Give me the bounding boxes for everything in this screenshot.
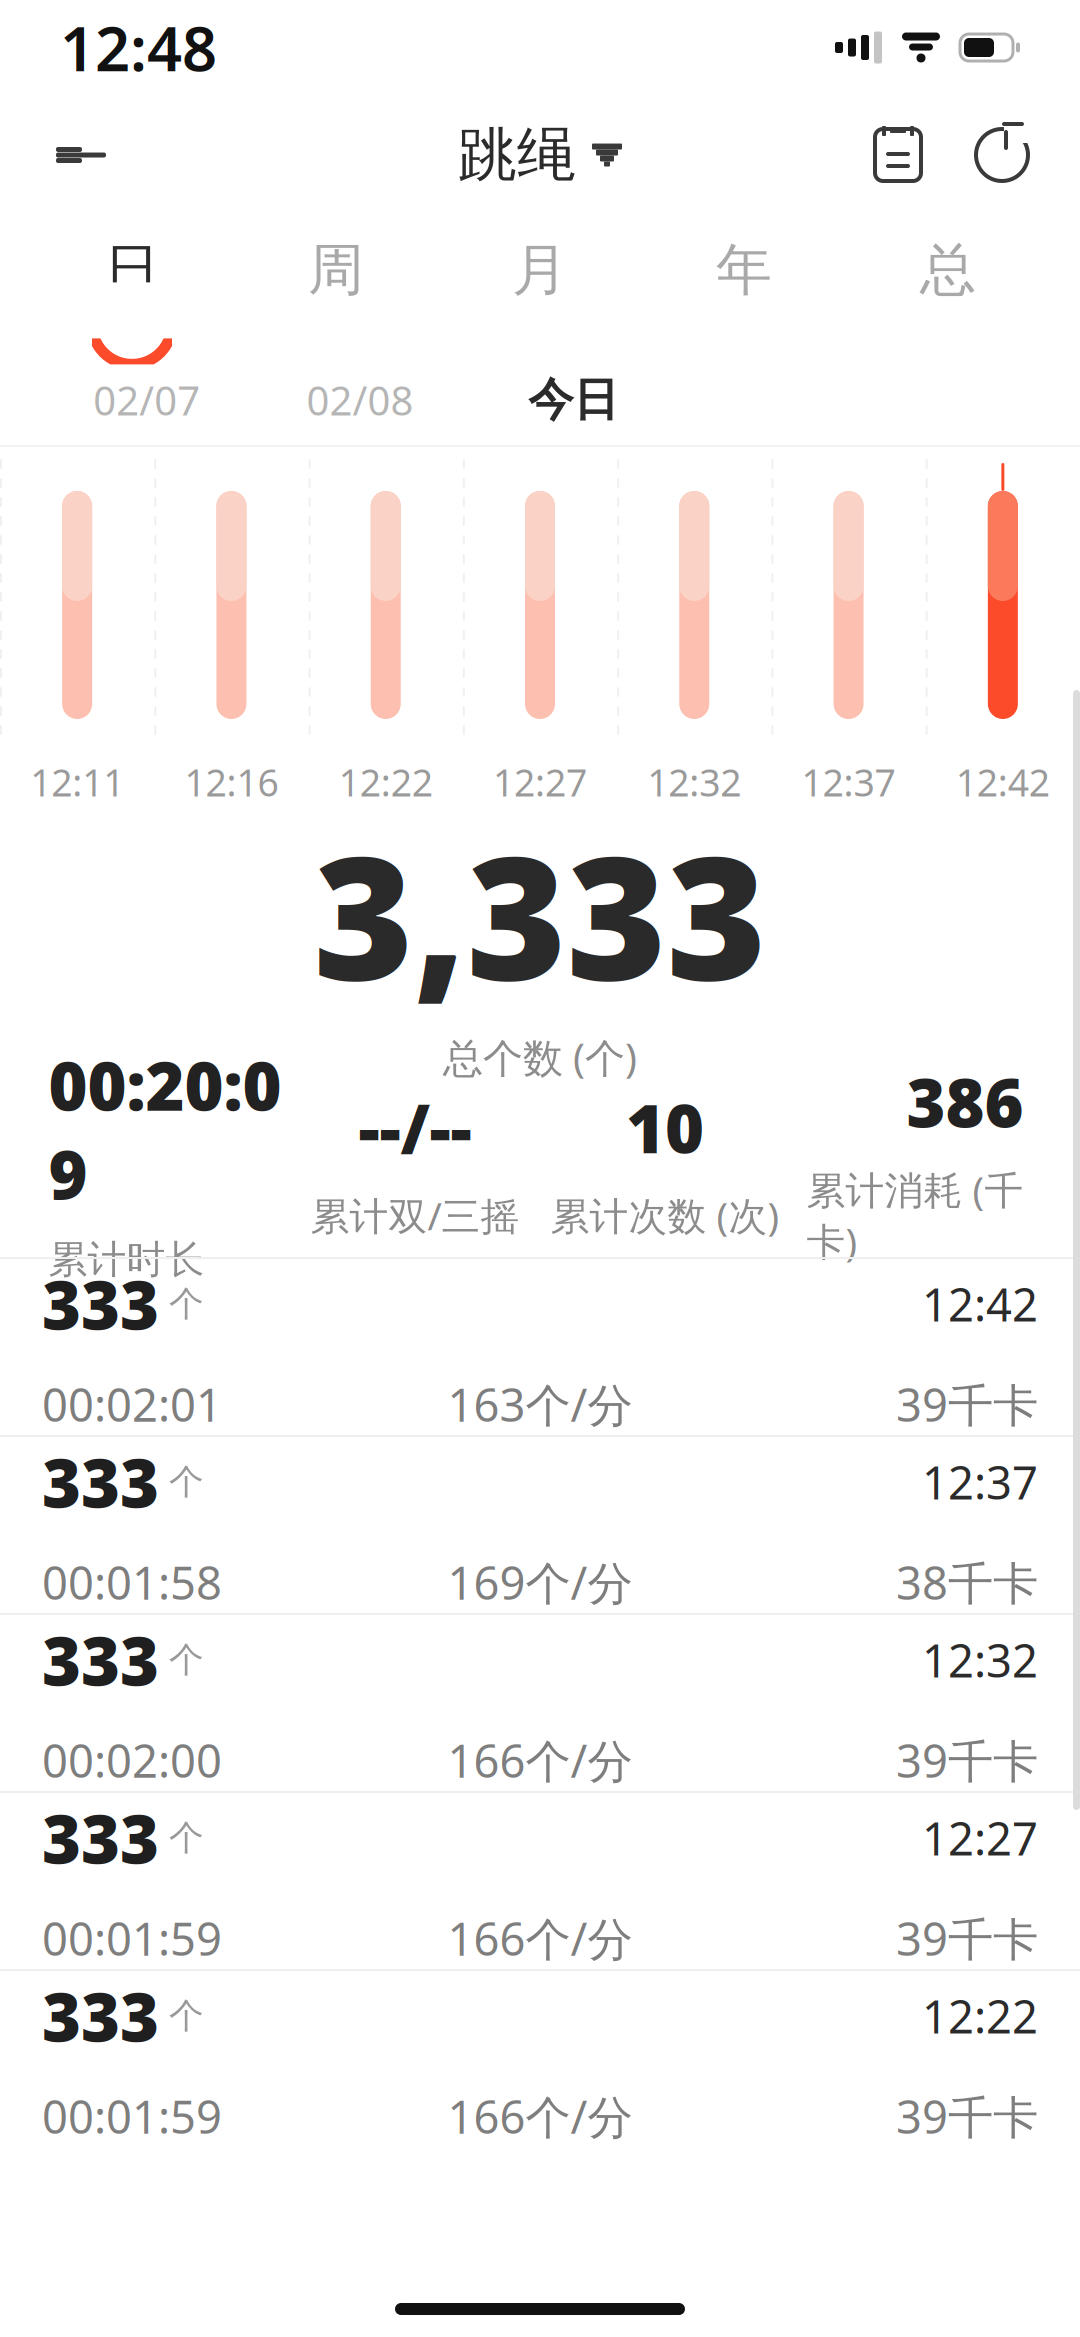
- staticText: 3,333: [313, 800, 766, 1027]
- staticText: 累计消耗 (千卡): [806, 1164, 1023, 1267]
- button[interactable]: 年: [642, 222, 846, 348]
- staticText: 333: [42, 1794, 159, 1882]
- staticText: 333: [42, 1972, 159, 2060]
- staticText: 个: [169, 1995, 204, 2037]
- button[interactable]: 02/07: [40, 361, 253, 438]
- staticText: 12:22: [339, 757, 433, 807]
- staticText: 386: [906, 1057, 1023, 1146]
- staticText: 12:48: [60, 7, 217, 88]
- staticText: 月: [512, 236, 568, 304]
- staticText: 12:27: [922, 1808, 1038, 1868]
- staticText: 00:01:59: [42, 2086, 222, 2146]
- button[interactable]: 周: [234, 222, 438, 348]
- staticText: 166个/分: [447, 2086, 632, 2146]
- staticText: 累计时长: [48, 1236, 204, 1283]
- staticText: 00:01:59: [42, 1908, 222, 1968]
- button[interactable]: 日: [30, 222, 234, 348]
- staticText: 12:37: [802, 757, 896, 807]
- staticText: 00:20:09: [48, 1041, 281, 1218]
- staticText: 12:16: [184, 757, 278, 807]
- staticText: 个: [169, 1639, 204, 1681]
- staticText: 00:02:01: [42, 1374, 222, 1434]
- staticText: 02/07: [93, 373, 200, 426]
- staticText: 12:37: [922, 1452, 1038, 1512]
- button[interactable]: 333: [0, 1615, 1080, 1791]
- staticText: 个: [169, 1817, 204, 1859]
- staticText: 年: [716, 236, 772, 304]
- staticText: 总个数 (个): [443, 1031, 637, 1084]
- button[interactable]: 跳绳: [448, 109, 632, 201]
- staticText: 总: [920, 236, 976, 304]
- staticText: 累计次数 (次): [550, 1190, 779, 1241]
- staticText: 38千卡: [896, 1552, 1038, 1612]
- staticText: 个: [169, 1283, 204, 1325]
- button[interactable]: 今日: [467, 360, 680, 440]
- button[interactable]: 333: [0, 1437, 1080, 1613]
- button[interactable]: 333: [0, 1971, 1080, 2147]
- staticText: 12:27: [493, 757, 587, 807]
- staticText: 12:42: [956, 757, 1050, 807]
- staticText: 39千卡: [896, 2086, 1038, 2146]
- staticText: 个: [169, 1461, 204, 1503]
- staticText: 跳绳: [458, 119, 576, 191]
- button[interactable]: Back: [38, 112, 124, 198]
- button[interactable]: 333: [0, 1793, 1080, 1969]
- staticText: 333: [42, 1260, 159, 1348]
- staticText: 10: [626, 1083, 704, 1172]
- button[interactable]: Records: [858, 115, 938, 195]
- staticText: 02/08: [306, 373, 413, 426]
- staticText: 12:32: [647, 757, 741, 807]
- button[interactable]: 333: [0, 1259, 1080, 1435]
- staticText: 周: [308, 236, 364, 304]
- staticText: 39千卡: [896, 1730, 1038, 1790]
- button[interactable]: 总: [846, 222, 1050, 348]
- staticText: 12:22: [922, 1986, 1038, 2046]
- staticText: 12:32: [922, 1630, 1038, 1690]
- staticText: 日: [104, 236, 160, 304]
- staticText: 12:42: [922, 1274, 1038, 1334]
- staticText: 166个/分: [447, 1730, 632, 1790]
- staticText: 39千卡: [896, 1908, 1038, 1968]
- staticText: --/--: [358, 1083, 471, 1172]
- button[interactable]: Share: [962, 115, 1042, 195]
- staticText: 今日: [528, 372, 618, 428]
- staticText: 累计双/三摇: [310, 1190, 519, 1241]
- staticText: 333: [42, 1438, 159, 1526]
- button[interactable]: 02/08: [253, 361, 467, 438]
- staticText: 39千卡: [896, 1374, 1038, 1434]
- button[interactable]: 月: [438, 222, 642, 348]
- staticText: 163个/分: [447, 1374, 632, 1434]
- staticText: 00:01:58: [42, 1552, 222, 1612]
- staticText: 12:11: [30, 757, 124, 807]
- staticText: 169个/分: [447, 1552, 632, 1612]
- staticText: 166个/分: [447, 1908, 632, 1968]
- staticText: 00:02:00: [42, 1730, 222, 1790]
- staticText: 333: [42, 1616, 159, 1704]
